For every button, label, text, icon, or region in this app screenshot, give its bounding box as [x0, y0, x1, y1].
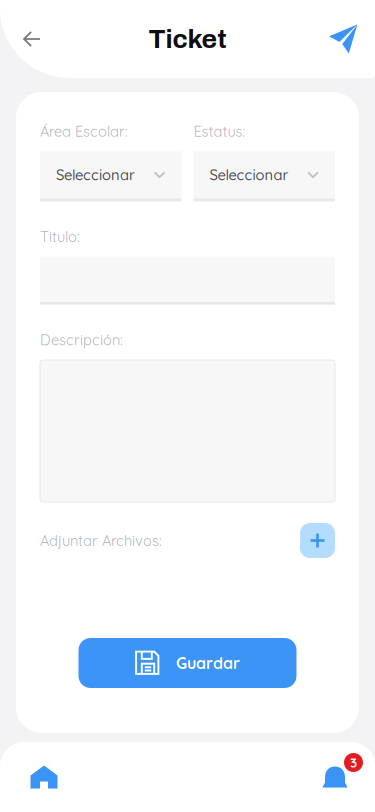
button[interactable]: Adjuntar Archivos: [300, 523, 335, 558]
staticText: Descripción:: [40, 331, 123, 349]
staticText: Área Escolar:: [40, 122, 128, 140]
staticText: Guardar: [176, 653, 240, 673]
button[interactable]: Guardar: [78, 638, 296, 688]
staticText: Estatus:: [193, 122, 245, 140]
staticText: Ticket: [148, 24, 226, 53]
button[interactable]: Atrás: [6, 13, 58, 65]
button[interactable]: Seleccionar: [40, 151, 181, 201]
button[interactable]: Seleccionar: [193, 151, 335, 201]
staticText: Adjuntar Archivos:: [40, 531, 162, 550]
button[interactable]: Notificaciones: [307, 753, 363, 801]
button[interactable]: Enviar: [317, 13, 369, 65]
staticText: 3: [350, 754, 357, 771]
staticText: Titulo:: [40, 227, 80, 246]
button[interactable]: Inicio: [12, 753, 76, 801]
staticText: Seleccionar: [56, 166, 135, 184]
staticText: Seleccionar: [209, 166, 288, 184]
